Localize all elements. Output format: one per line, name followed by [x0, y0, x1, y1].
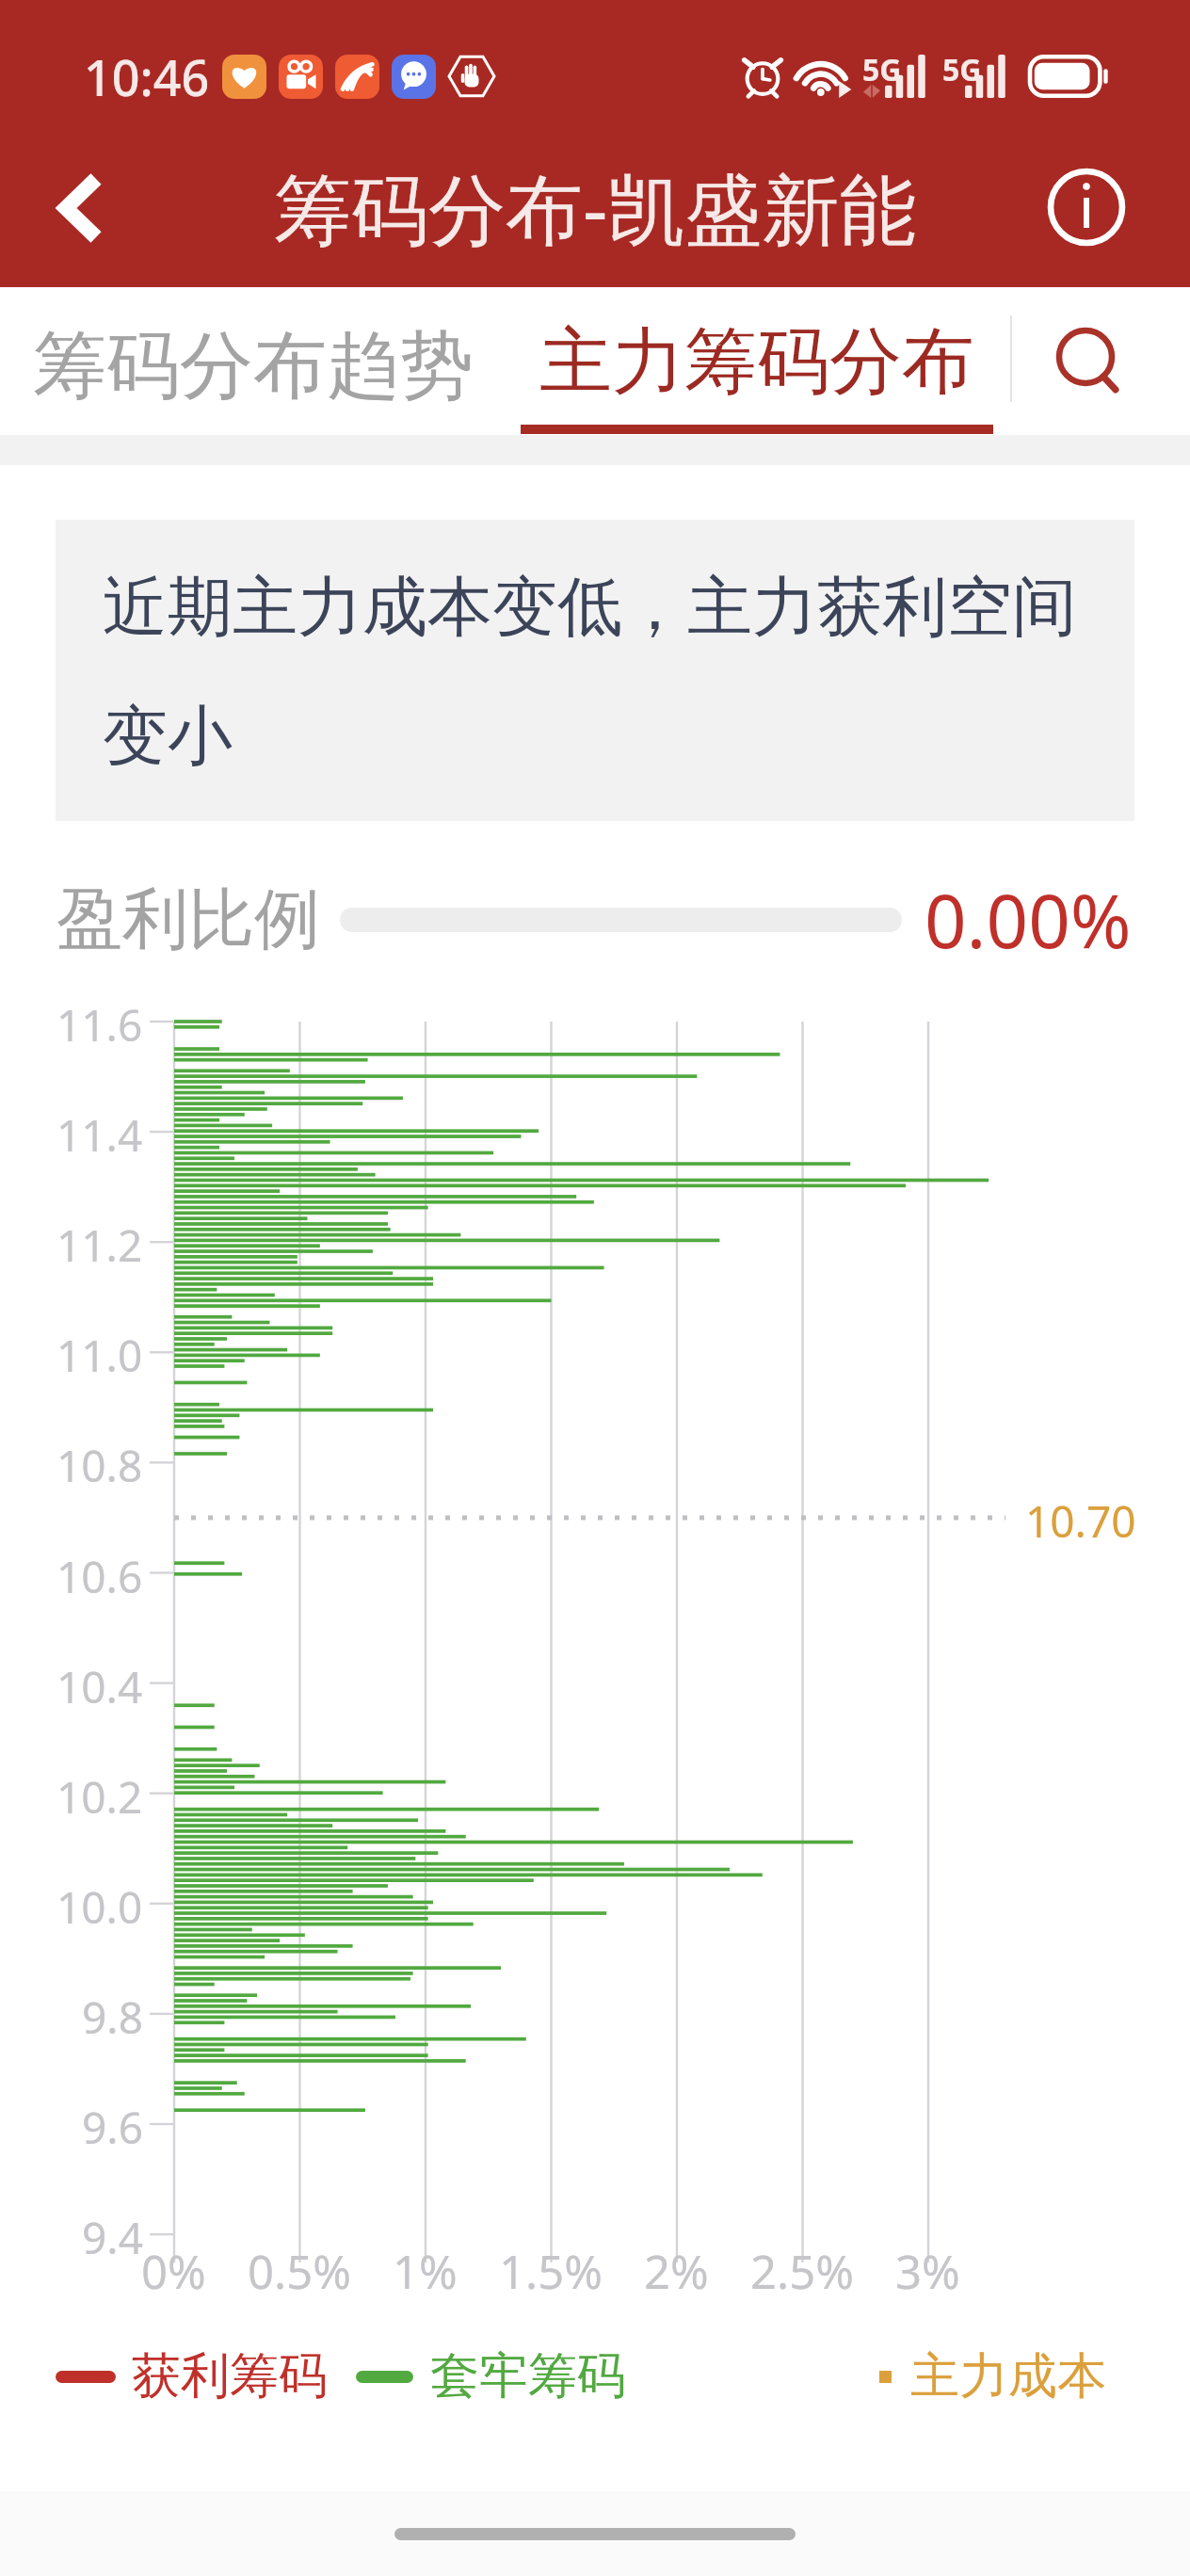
- staticText: 11.2: [56, 1216, 143, 1275]
- staticText: 10.0: [56, 1877, 143, 1937]
- staticText: 获利筹码: [132, 2345, 328, 2407]
- button[interactable]: Info: [1035, 155, 1138, 259]
- staticText: 9.4: [82, 2208, 143, 2267]
- staticText: 3%: [895, 2240, 960, 2303]
- staticText: 近期主力成本变低，主力获利空间变小: [103, 567, 1089, 777]
- staticText: 筹码分布趋势: [33, 320, 474, 412]
- staticText: 10.70: [1025, 1491, 1136, 1551]
- staticText: 0%: [141, 2240, 206, 2303]
- button[interactable]: 主力筹码分布: [520, 311, 994, 439]
- staticText: 10:46: [84, 43, 210, 110]
- staticText: 1%: [393, 2240, 458, 2303]
- staticText: 主力成本: [910, 2345, 1106, 2407]
- staticText: 11.6: [56, 995, 143, 1055]
- staticText: 9.6: [82, 2098, 143, 2157]
- button[interactable]: 筹码分布趋势: [17, 310, 490, 423]
- staticText: 0.5%: [248, 2240, 351, 2303]
- staticText: 9.8: [82, 1988, 143, 2047]
- button[interactable]: Back: [23, 151, 136, 264]
- button[interactable]: Search: [1029, 298, 1161, 411]
- staticText: 11.4: [56, 1105, 143, 1165]
- staticText: 2.5%: [750, 2240, 854, 2303]
- staticText: 筹码分布-凯盛新能: [274, 154, 917, 260]
- staticText: 1.5%: [499, 2240, 603, 2303]
- staticText: 10.2: [56, 1767, 143, 1827]
- staticText: 套牢筹码: [430, 2345, 626, 2407]
- staticText: 0.00%: [925, 870, 1132, 970]
- staticText: 10.6: [56, 1547, 143, 1606]
- staticText: 2%: [644, 2240, 709, 2303]
- staticText: 主力筹码分布: [539, 316, 974, 408]
- staticText: 11.0: [56, 1326, 143, 1385]
- staticText: 10.8: [56, 1436, 143, 1495]
- staticText: 10.4: [56, 1657, 143, 1716]
- staticText: 盈利比例: [56, 878, 320, 961]
- staticText: 5G: [942, 49, 982, 90]
- staticText: 5G: [862, 49, 902, 90]
